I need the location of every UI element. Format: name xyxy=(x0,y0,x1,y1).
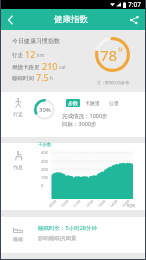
staticText: 10K xyxy=(41,175,49,180)
staticText: 210 xyxy=(42,60,58,72)
staticText: 行走 xyxy=(13,111,23,117)
button[interactable]: 步数 xyxy=(66,99,80,107)
staticText: 30K xyxy=(41,159,49,164)
staticText: 30% xyxy=(39,106,51,114)
staticText: 14:00 xyxy=(109,199,118,208)
button[interactable]: Back xyxy=(0,9,21,30)
button[interactable]: 卡路里 xyxy=(83,99,102,107)
staticText: 燃烧卡路里 xyxy=(12,64,40,71)
staticText: 分 xyxy=(118,46,123,52)
staticText: 睡眠 xyxy=(13,236,23,242)
staticText: 睡眠时长：5小时28分钟 xyxy=(38,224,97,232)
staticText: 15:00 xyxy=(121,199,130,208)
staticText: 0 xyxy=(41,183,44,188)
staticText: 注：数据仅供参考 xyxy=(97,80,129,85)
staticText: 12 xyxy=(25,48,36,60)
staticText: 公里 xyxy=(109,100,119,106)
staticText: 卡路里 xyxy=(85,100,100,106)
staticText: 完成情况：1000步 xyxy=(62,112,108,120)
staticText: cal xyxy=(59,64,66,71)
staticText: km xyxy=(37,52,45,59)
staticText: 时间 xyxy=(127,203,135,208)
staticText: 行走 xyxy=(12,52,23,59)
staticText: 11:00 xyxy=(72,199,81,208)
staticText: 目标：3000步 xyxy=(62,120,97,128)
button[interactable]: 公里 xyxy=(107,99,121,107)
staticText: 影响睡眠的因素 xyxy=(38,235,77,242)
staticText: 78 xyxy=(100,45,118,65)
button[interactable]: Share xyxy=(126,11,143,28)
staticText: 12:00 xyxy=(85,199,94,208)
staticText: 睡眠时间 xyxy=(12,75,34,82)
staticText: 千步数 xyxy=(38,142,52,148)
staticText: 7:07 xyxy=(128,0,141,9)
staticText: 7.5 xyxy=(36,71,49,83)
button[interactable]: 睡眠 xyxy=(11,227,25,242)
button[interactable]: 睡眠时长：5小时28分钟 xyxy=(38,224,97,242)
staticText: 今日健康习惯指数 xyxy=(12,37,60,45)
button[interactable]: 作息 xyxy=(11,151,25,170)
staticText: 40K xyxy=(41,150,49,155)
staticText: 20K xyxy=(41,167,49,172)
staticText: 步数 xyxy=(68,100,78,106)
button[interactable]: 行走 xyxy=(11,98,25,117)
staticText: 作息 xyxy=(13,164,23,170)
staticText: 健康指数 xyxy=(54,14,88,25)
staticText: 09:00 xyxy=(48,199,57,208)
staticText: h xyxy=(50,75,54,82)
staticText: 10:00 xyxy=(60,199,69,208)
staticText: 13:00 xyxy=(97,199,106,208)
